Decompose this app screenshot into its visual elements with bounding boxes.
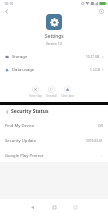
staticText: Uninstall	[46, 94, 57, 98]
button[interactable]: Recents	[69, 201, 82, 214]
button[interactable]: Google Play Protect	[0, 148, 108, 163]
staticText: Force stop	[29, 94, 42, 98]
staticText: Security Update	[5, 138, 37, 144]
button[interactable]: Back	[2, 7, 11, 16]
staticText: 10.27 GB	[86, 55, 100, 59]
staticText: Storage	[12, 54, 28, 60]
button[interactable]: Security Update	[0, 133, 108, 148]
button[interactable]: Clear data	[59, 86, 75, 98]
staticText: Data usage	[12, 67, 35, 73]
button[interactable]: Uninstall	[43, 86, 59, 98]
staticText: Settings	[45, 33, 64, 40]
staticText: Version 1.0	[46, 42, 63, 46]
button[interactable]: Find My Device	[0, 118, 108, 133]
staticText: 1.2 GB	[90, 68, 100, 72]
button[interactable]: Home	[48, 201, 61, 214]
staticText: Google Play Protect	[5, 153, 44, 159]
staticText: 2019-03-01	[86, 139, 103, 143]
button[interactable]: Force stop	[27, 86, 43, 98]
button[interactable]: Back	[3, 108, 10, 115]
staticText: Security Status	[11, 108, 49, 115]
button[interactable]: Back	[26, 201, 39, 214]
button[interactable]: Help	[97, 7, 106, 16]
staticText: Find My Device	[5, 123, 35, 129]
staticText: 10:10	[4, 1, 14, 6]
button[interactable]: Storage	[0, 50, 108, 63]
staticText: Off	[98, 124, 103, 128]
button[interactable]: Data usage	[0, 63, 108, 76]
staticText: Clear data	[61, 94, 74, 98]
